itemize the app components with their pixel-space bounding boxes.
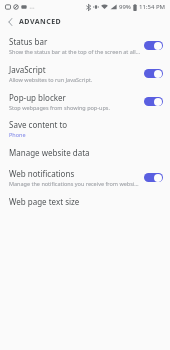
button[interactable]: Back [3,15,17,29]
staticText: JavaScript [9,64,46,75]
staticText: Save content to [9,119,68,130]
button[interactable]: Web notifications [0,164,170,190]
staticText: ADVANCED [19,17,62,27]
staticText: Manage the notifications you receive fro… [9,180,140,187]
staticText: Status bar [9,36,48,47]
button[interactable]: Save content to [0,115,170,141]
button[interactable]: Web page text size [0,190,170,213]
button[interactable]: Manage website data [0,141,170,164]
staticText: Manage website data [9,147,90,158]
button[interactable]: On [144,97,163,106]
staticText: 99% [119,3,131,11]
staticText: 11:54 PM [139,3,166,11]
button[interactable]: On [144,173,163,182]
staticText: Pop-up blocker [9,92,66,103]
staticText: Stop webpages from showing pop-ups. [9,104,110,111]
button[interactable]: On [144,41,163,50]
button[interactable]: Pop-up blocker [0,87,170,115]
staticText: Phone [9,131,26,138]
staticText: Web notifications [9,168,75,179]
staticText: Show the status bar at the top of the sc… [9,48,140,55]
staticText: Allow websites to run JavaScript. [9,76,93,83]
button[interactable]: Status bar [0,31,170,59]
staticText: Web page text size [9,196,80,207]
button[interactable]: On [144,69,163,78]
button[interactable]: JavaScript [0,59,170,87]
